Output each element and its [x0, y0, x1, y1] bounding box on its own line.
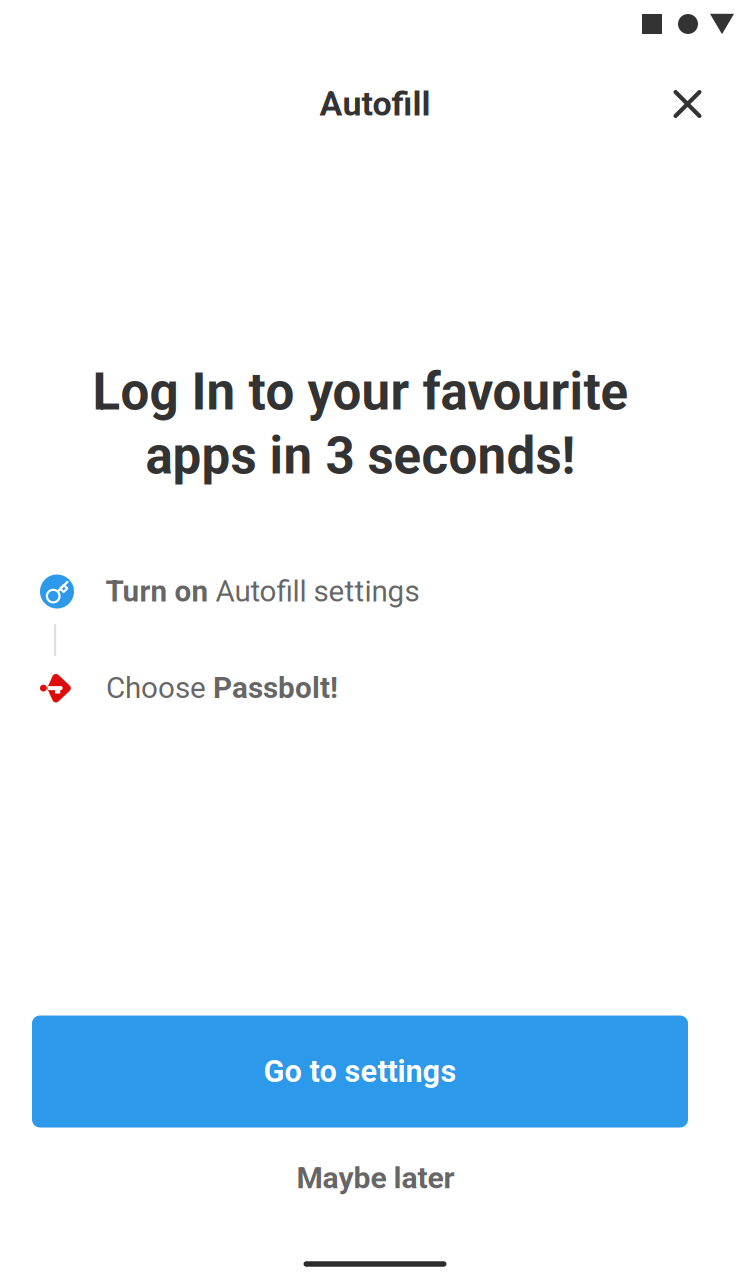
staticText: Passbolt! — [213, 671, 338, 705]
staticText: Autofill settings — [215, 574, 419, 609]
staticText: Choose — [106, 671, 213, 705]
button[interactable]: Go to settings — [32, 1015, 688, 1127]
staticText: Go to settings — [263, 1053, 456, 1089]
button[interactable]: Maybe later — [255, 1150, 495, 1206]
button[interactable]: Close — [655, 72, 719, 136]
staticText: Log In to your favourite — [92, 362, 628, 422]
staticText: Turn on — [105, 574, 215, 609]
staticText: Maybe later — [296, 1160, 454, 1196]
staticText: Autofill — [319, 84, 430, 124]
staticText: apps in 3 seconds! — [145, 426, 575, 486]
